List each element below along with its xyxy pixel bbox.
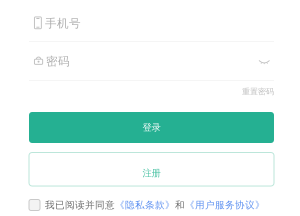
button[interactable]: Agree to privacy policy [29,199,40,210]
button[interactable]: 《隐私条款》 [115,199,175,211]
button[interactable]: 注册 [29,152,274,186]
staticText: 《用户服务协议》 [185,199,265,211]
button[interactable]: 登录 [29,112,274,143]
staticText: 我已阅读并同意 [45,199,115,211]
button[interactable]: Show password [256,55,272,69]
staticText: 登录 [142,122,160,133]
staticText: 《隐私条款》 [115,199,175,211]
staticText: 手机号 [45,16,81,31]
button[interactable]: 《用户服务协议》 [185,199,265,211]
staticText: 密码 [46,54,70,69]
staticText: 注册 [142,167,160,179]
staticText: 和 [175,199,185,211]
button[interactable]: 重置密码 [29,85,274,98]
staticText: 重置密码 [242,86,274,97]
